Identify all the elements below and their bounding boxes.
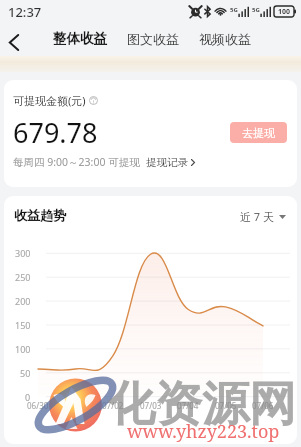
staticText: 100 <box>278 7 291 17</box>
button[interactable]: 去提现 <box>230 122 287 143</box>
staticText: 679.78 <box>13 114 98 151</box>
staticText: 5G <box>252 6 260 14</box>
staticText: 07/05 <box>215 400 237 411</box>
staticText: 提现记录 <box>146 156 188 169</box>
staticText: 07/01 <box>65 400 87 411</box>
staticText: 0 <box>25 391 31 403</box>
staticText: 去提现 <box>242 126 275 140</box>
staticText: 5G <box>230 6 238 14</box>
button[interactable]: 视频收益 <box>199 31 251 47</box>
staticText: 200 <box>15 295 31 307</box>
staticText: 07/04 <box>177 400 199 411</box>
staticText: 150 <box>15 319 31 331</box>
button[interactable]: 图文收益 <box>127 31 179 47</box>
staticText: 12:37 <box>8 3 42 21</box>
staticText: 化资源网 <box>108 375 296 434</box>
staticText: 06/30 <box>27 400 49 411</box>
staticText: 每周四 9:00～23:00 可提现 <box>13 155 140 169</box>
staticText: www.yhzy223.top <box>127 419 280 444</box>
button[interactable]: 整体收益 <box>53 30 107 47</box>
button[interactable]: 近 7 天 <box>240 209 286 224</box>
staticText: 视频收益 <box>199 31 251 47</box>
staticText: 100 <box>15 343 31 355</box>
staticText: 收益趋势 <box>14 207 66 223</box>
staticText: 07/03 <box>140 400 162 411</box>
staticText: 50 <box>20 367 31 379</box>
staticText: 整体收益 <box>53 30 107 47</box>
button[interactable]: 提现记录 <box>146 156 195 169</box>
staticText: 07/02 <box>102 400 124 411</box>
staticText: 可提现金额(元) <box>13 93 86 108</box>
staticText: 近 7 天 <box>240 209 275 224</box>
button[interactable]: Back <box>0 26 30 58</box>
staticText: 07/06 <box>252 400 274 411</box>
staticText: 250 <box>15 271 31 283</box>
staticText: 300 <box>15 247 31 259</box>
staticText: 图文收益 <box>127 31 179 47</box>
